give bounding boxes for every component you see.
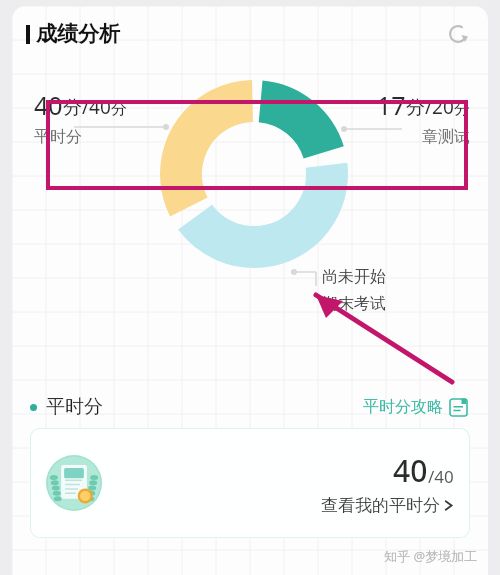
staticText: 章测试 [422, 127, 470, 147]
staticText: 查看我的平时分 [321, 495, 440, 516]
staticText: 40 [393, 450, 428, 491]
staticText: 分 [63, 96, 82, 120]
button[interactable]: 刷新 [440, 16, 476, 52]
staticText: 40 [34, 88, 63, 122]
staticText: 分 [454, 99, 470, 119]
staticText: /20 [425, 94, 454, 120]
staticText: 成绩分析 [36, 21, 120, 47]
button[interactable]: 平时分攻略 [361, 395, 470, 419]
staticText: 分 [111, 99, 127, 119]
staticText: 尚未开始 [322, 267, 386, 287]
staticText: 平时分 [34, 127, 82, 147]
staticText: 平时分攻略 [363, 397, 443, 417]
staticText: 17 [377, 88, 406, 122]
staticText: 知乎 @梦境加工 [384, 547, 478, 565]
staticText: 平时分 [46, 395, 103, 419]
button[interactable]: 40 [30, 428, 470, 538]
staticText: 期末考试 [322, 294, 386, 314]
staticText: /40 [82, 94, 111, 120]
staticText: /40 [428, 465, 454, 488]
staticText: 分 [406, 96, 425, 120]
